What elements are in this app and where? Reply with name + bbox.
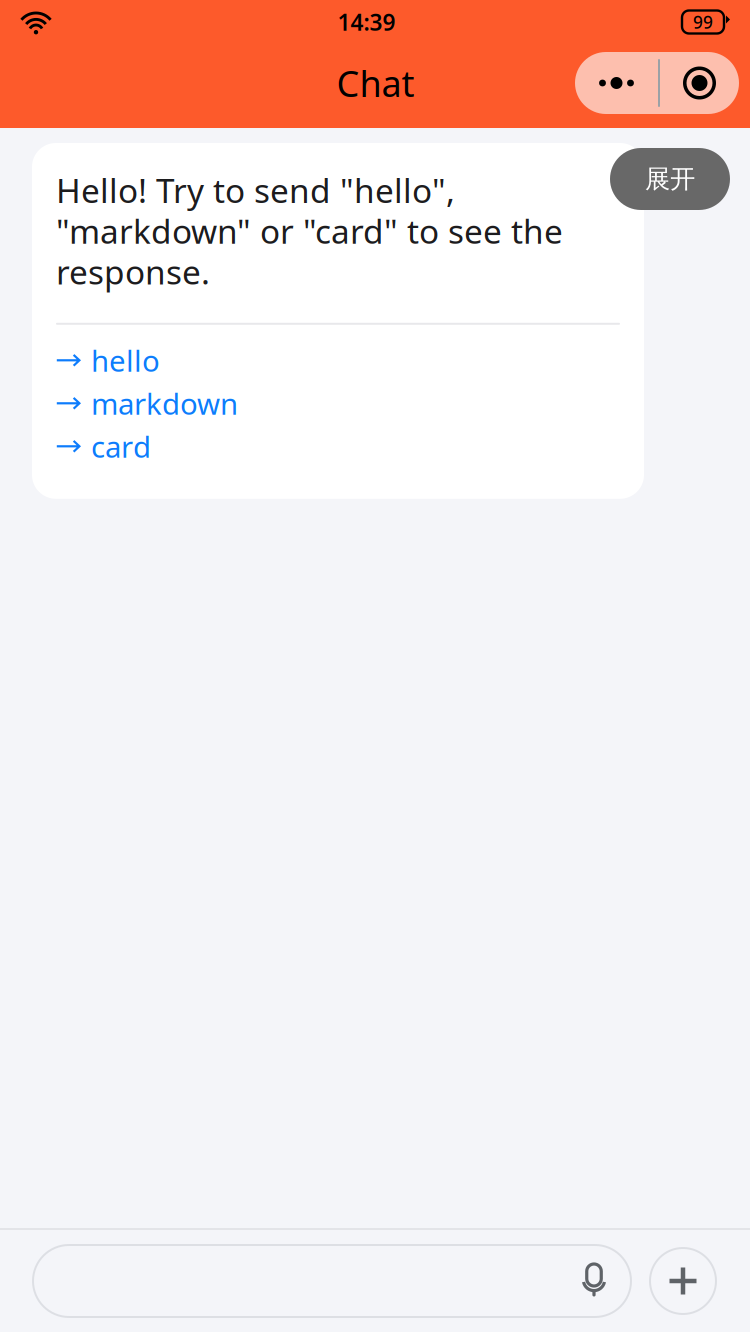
staticText: 展开 <box>645 163 695 194</box>
staticText: 14:39 <box>337 7 395 37</box>
button[interactable]: More <box>575 52 658 114</box>
button[interactable]: card <box>56 425 620 468</box>
staticText: markdown <box>91 384 238 423</box>
staticText: card <box>91 427 151 466</box>
button[interactable]: hello <box>56 339 620 382</box>
button[interactable]: More options <box>650 1248 716 1314</box>
staticText: Chat <box>336 59 414 107</box>
staticText: hello <box>91 341 160 380</box>
button[interactable]: markdown <box>56 382 620 425</box>
button[interactable]: 展开 <box>610 148 730 210</box>
button[interactable]: Message <box>33 1245 631 1317</box>
staticText: Hello! Try to send "hello", "markdown" o… <box>56 168 563 294</box>
button[interactable]: Close <box>660 52 739 114</box>
staticText: 99 <box>693 10 713 33</box>
